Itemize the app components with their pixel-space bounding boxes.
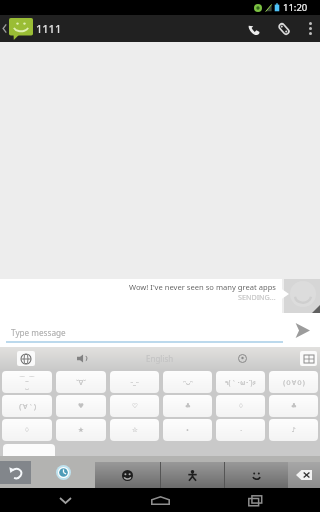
staticText: ★ xyxy=(78,426,84,434)
button[interactable]: Recently used xyxy=(31,456,95,488)
button[interactable]: · xyxy=(216,419,265,441)
button[interactable]: (´∀｀) xyxy=(2,395,52,417)
staticText: (Ｏ∀Ｏ) xyxy=(283,378,305,387)
button[interactable]: Recent apps xyxy=(225,488,285,512)
staticText: ♢ xyxy=(24,426,30,434)
staticText: ♪ xyxy=(291,426,296,434)
button[interactable]: ♣ xyxy=(163,395,212,417)
button[interactable]: ♢ xyxy=(2,419,52,441)
button[interactable]: ٩(｀･ω･´)۶ xyxy=(216,371,265,393)
button[interactable]: Home xyxy=(130,488,190,512)
button[interactable]: ♪ xyxy=(269,419,318,441)
button[interactable]: Attach xyxy=(268,15,300,42)
staticText: ♥ xyxy=(78,402,84,410)
button[interactable]: People xyxy=(161,462,224,488)
button[interactable]: Navigate up, conversation 1111 xyxy=(0,15,68,42)
button[interactable]: ♢ xyxy=(216,395,265,417)
staticText: • xyxy=(186,426,189,435)
button[interactable]: ♥ xyxy=(56,395,106,417)
button[interactable]: Call xyxy=(240,15,268,42)
button[interactable]: (Ｏ∀Ｏ) xyxy=(269,371,318,393)
staticText: 1111 xyxy=(36,21,62,36)
staticText: ⌒_⌒ ‿ xyxy=(19,374,35,390)
button[interactable]: Delete xyxy=(288,462,320,488)
staticText: English xyxy=(146,353,174,364)
button[interactable]: Emoticons xyxy=(225,462,288,488)
staticText: (´∀｀) xyxy=(19,402,36,411)
button[interactable]: ˘∇˘ xyxy=(56,371,106,393)
staticText: 11:20 xyxy=(283,1,308,14)
button[interactable] xyxy=(3,444,55,456)
staticText: ♢ xyxy=(238,402,244,410)
button[interactable]: ☆ xyxy=(110,419,159,441)
button[interactable]: Back xyxy=(0,461,31,484)
button[interactable]: Smileys xyxy=(95,462,160,488)
button[interactable]: Send xyxy=(284,313,320,347)
button[interactable]: ᵕ_ᵕ xyxy=(110,371,159,393)
staticText: · xyxy=(240,426,242,435)
button[interactable]: Change language xyxy=(17,351,35,366)
button[interactable]: Keyboard settings xyxy=(300,351,317,366)
staticText: Type message xyxy=(11,327,66,338)
button[interactable]: ♣ xyxy=(269,395,318,417)
button[interactable]: • xyxy=(163,419,212,441)
staticText: ♣ xyxy=(291,402,297,410)
staticText: ☆ xyxy=(132,426,138,434)
staticText: ˘∇˘ xyxy=(76,378,86,387)
staticText: Wow! I've never seen so many great apps xyxy=(129,282,276,292)
staticText: SENDING... xyxy=(238,292,276,302)
button[interactable]: ★ xyxy=(56,419,106,441)
staticText: ♡ xyxy=(132,402,138,410)
button[interactable]: ᵔᴗᵔ xyxy=(163,371,212,393)
staticText: ᵕ_ᵕ xyxy=(130,378,139,387)
button[interactable]: Hide keyboard xyxy=(35,488,95,512)
staticText: ♣ xyxy=(185,402,191,410)
button[interactable]: ⌒_⌒ ‿ xyxy=(2,371,52,393)
button[interactable]: ♡ xyxy=(110,395,159,417)
staticText: ٩(｀･ω･´)۶ xyxy=(225,378,256,387)
button[interactable]: More options xyxy=(300,15,320,42)
staticText: ᵔᴗᵔ xyxy=(183,378,193,387)
